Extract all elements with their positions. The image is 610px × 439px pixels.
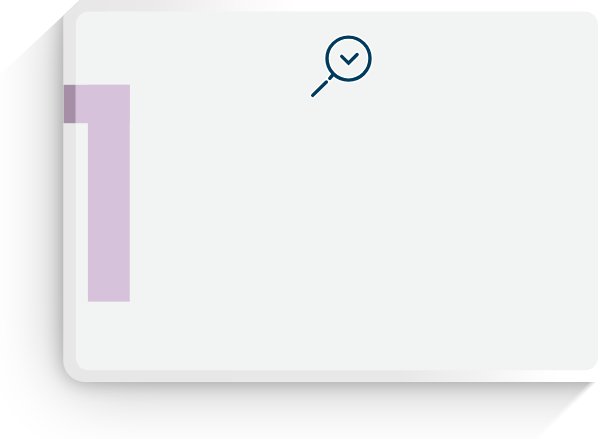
button[interactable]: Search <box>0 0 610 439</box>
